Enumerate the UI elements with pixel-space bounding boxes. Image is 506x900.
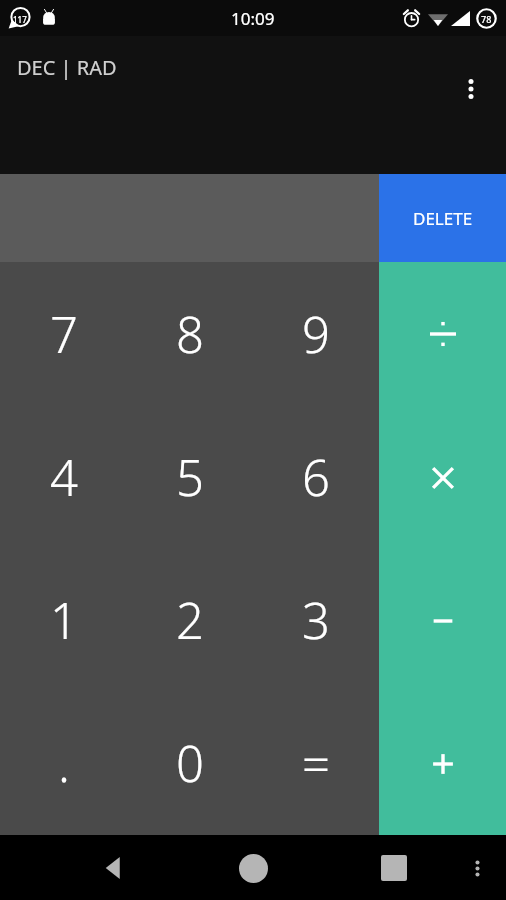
button[interactable]: 9	[253, 262, 379, 406]
button[interactable]: Multiply	[379, 406, 506, 549]
button[interactable]: .	[0, 692, 127, 835]
staticText: .	[58, 730, 70, 797]
staticText: 10:09	[231, 7, 275, 30]
staticText: 2	[176, 587, 204, 654]
staticText: 6	[302, 444, 330, 511]
staticText: 7	[50, 301, 78, 368]
staticText: 78	[481, 13, 492, 25]
button[interactable]: Subtract	[379, 549, 506, 692]
staticText: 4	[50, 444, 78, 511]
staticText: =	[302, 730, 330, 797]
button[interactable]: 8	[127, 262, 253, 406]
staticText: DELETE	[413, 207, 473, 230]
staticText: DEC | RAD	[17, 54, 117, 81]
button[interactable]: 5	[127, 406, 253, 549]
button[interactable]: 2	[127, 549, 253, 692]
button[interactable]: 6	[253, 406, 379, 549]
staticText: 1	[50, 587, 78, 654]
button[interactable]: 7	[0, 262, 127, 406]
button[interactable]: 4	[0, 406, 127, 549]
staticText: 117	[13, 14, 27, 25]
button[interactable]: =	[253, 692, 379, 835]
button[interactable]: Back	[83, 838, 143, 898]
button[interactable]: Recent apps	[364, 838, 424, 898]
staticText: 8	[176, 301, 204, 368]
button[interactable]: 3	[253, 549, 379, 692]
button[interactable]: Divide	[379, 262, 506, 406]
button[interactable]: Home	[223, 838, 283, 898]
button[interactable]: Add	[379, 692, 506, 835]
staticText: 9	[302, 301, 330, 368]
button[interactable]: DELETE	[379, 174, 506, 262]
staticText: 3	[302, 587, 330, 654]
staticText: 0	[176, 730, 204, 797]
button[interactable]: 1	[0, 549, 127, 692]
button[interactable]: 0	[127, 692, 253, 835]
button[interactable]: More options	[446, 64, 496, 114]
button[interactable]: Navigation options	[454, 845, 500, 891]
staticText: 5	[176, 444, 204, 511]
